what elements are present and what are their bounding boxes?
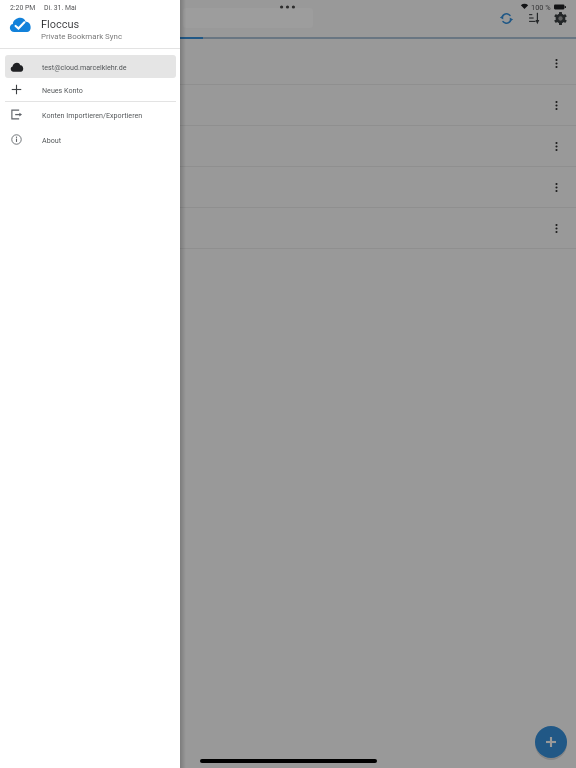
button[interactable]: More options <box>0 166 576 207</box>
button[interactable]: Neues Konto <box>5 78 176 101</box>
staticText: About <box>42 136 62 144</box>
button[interactable]: Sync now <box>496 8 517 29</box>
button[interactable]: More options <box>0 125 576 166</box>
button[interactable]: Sort <box>523 8 544 29</box>
button[interactable]: Add account <box>535 726 567 758</box>
staticText: Konten Importieren/Exportieren <box>42 111 143 119</box>
staticText: 2:20 PM <box>10 4 36 12</box>
staticText: Floccus <box>41 18 80 31</box>
button[interactable]: More options <box>547 54 565 72</box>
staticText: 100 % <box>531 3 551 12</box>
button[interactable]: More options <box>547 219 565 237</box>
button[interactable]: More options <box>547 178 565 196</box>
button[interactable]: test@cloud.marcelklehr.de <box>5 55 176 78</box>
button[interactable]: More options <box>0 207 576 248</box>
button[interactable]: More options <box>547 137 565 155</box>
staticText: Di. 31. Mai <box>44 4 77 12</box>
staticText: Private Bookmark Sync <box>41 32 123 41</box>
button[interactable]: Konten Importieren/Exportieren <box>5 103 176 126</box>
button[interactable]: More options <box>547 96 565 114</box>
button[interactable]: More options <box>0 42 576 83</box>
staticText: test@cloud.marcelklehr.de <box>42 63 127 71</box>
button[interactable]: About <box>5 128 176 151</box>
staticText: Neues Konto <box>42 86 83 94</box>
button[interactable]: More options <box>0 84 576 125</box>
button[interactable]: Settings <box>550 8 571 29</box>
